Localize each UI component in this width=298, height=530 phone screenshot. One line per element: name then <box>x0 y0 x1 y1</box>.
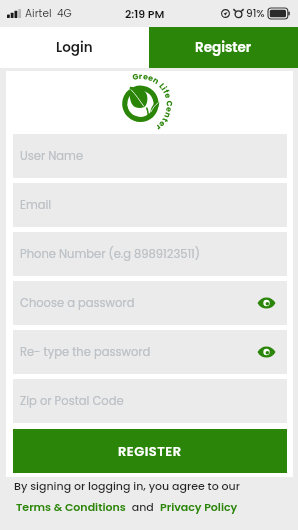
staticText: Re- type the password <box>20 344 151 360</box>
staticText: By signing or logging in, you agree to o… <box>14 478 240 493</box>
staticText: Airtel <box>25 6 52 21</box>
button[interactable]: Terms & Conditions <box>16 499 126 514</box>
button[interactable]: Show password <box>254 340 278 364</box>
button[interactable]: User Name <box>13 134 287 178</box>
staticText: Terms & Conditions <box>16 499 126 514</box>
button[interactable]: Privacy Policy <box>160 499 238 514</box>
button[interactable]: Email <box>13 183 287 227</box>
staticText: Register <box>195 38 252 57</box>
staticText: 2:19 PM <box>125 6 165 21</box>
staticText: 91% <box>246 6 265 21</box>
button[interactable]: Re- type the password <box>13 330 287 374</box>
button[interactable]: Phone Number (e.g 8989123511) <box>13 232 287 276</box>
button[interactable]: Show password <box>254 291 278 315</box>
button[interactable]: REGISTER <box>13 429 287 473</box>
staticText: REGISTER <box>118 442 182 460</box>
staticText: Phone Number (e.g 8989123511) <box>20 246 200 262</box>
staticText: 4G <box>57 6 72 21</box>
staticText: Choose a password <box>20 295 135 311</box>
staticText: and <box>126 499 160 514</box>
button[interactable]: Choose a password <box>13 281 287 325</box>
button[interactable]: Zip or Postal Code <box>13 379 287 423</box>
staticText: Login <box>56 38 93 57</box>
staticText: Privacy Policy <box>160 499 238 514</box>
button[interactable]: Login <box>0 27 149 68</box>
staticText: Zip or Postal Code <box>20 393 124 409</box>
staticText: User Name <box>20 148 84 164</box>
button[interactable]: Register <box>149 27 298 68</box>
staticText: Email <box>20 197 52 213</box>
